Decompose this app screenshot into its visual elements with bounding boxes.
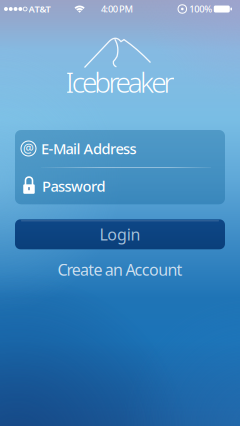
staticText: Login (99, 224, 141, 245)
staticText: E-Mail Address (41, 139, 136, 158)
staticText: AT&T (29, 3, 51, 15)
button[interactable]: @ (15, 130, 225, 167)
button[interactable]: Create an Account (47, 255, 193, 284)
staticText: Icebreaker (66, 63, 174, 101)
staticText: 100% (189, 3, 212, 15)
button[interactable]: Password (15, 168, 225, 204)
staticText: Create an Account (57, 259, 183, 280)
button[interactable]: Login (15, 219, 225, 249)
staticText: Password (42, 176, 105, 196)
staticText: 4:00 PM (101, 3, 133, 15)
staticText: @ (23, 140, 34, 156)
